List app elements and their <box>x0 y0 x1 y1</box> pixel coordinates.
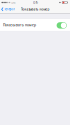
button[interactable]: Показывать номер <box>0 19 70 31</box>
staticText: Телефон <box>4 7 15 11</box>
staticText: Показывать номер <box>20 7 49 11</box>
button[interactable]: Телефон <box>0 5 17 13</box>
staticText: Показывать номер <box>3 23 36 27</box>
staticText: МТС <box>11 1 15 4</box>
staticText: 12:45 <box>32 1 37 4</box>
